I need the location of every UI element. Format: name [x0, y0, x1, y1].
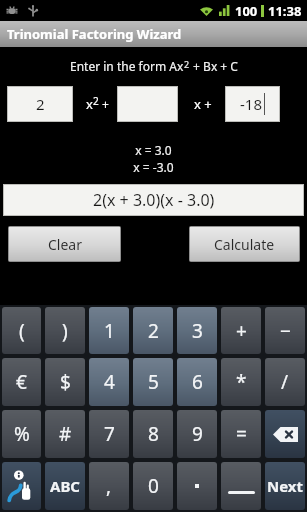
staticText: Next — [267, 476, 304, 496]
button[interactable]: Input method options — [2, 462, 41, 510]
staticText: + — [99, 96, 109, 112]
staticText: 0 — [148, 473, 159, 499]
staticText: * — [236, 369, 247, 395]
staticText: + — [236, 318, 247, 344]
button[interactable]: Space — [221, 462, 261, 510]
button[interactable]: % — [2, 410, 41, 458]
staticText: ( — [19, 318, 25, 344]
staticText: 2 — [184, 58, 190, 70]
staticText: + Bx + C — [190, 58, 238, 74]
staticText: 7 — [104, 421, 115, 447]
button[interactable]: 8 — [133, 410, 173, 458]
staticText: % — [14, 421, 30, 447]
staticText: -18 — [240, 94, 262, 114]
button[interactable]: Calculate — [190, 227, 299, 261]
staticText: x + — [194, 95, 212, 113]
staticText: # — [59, 421, 72, 447]
staticText: 2 — [93, 94, 99, 108]
staticText: 11:38 — [268, 2, 302, 20]
button[interactable]: ) — [45, 307, 85, 354]
staticText: 3 — [192, 318, 203, 344]
staticText: x — [86, 95, 93, 113]
staticText: 1 — [104, 318, 115, 344]
button[interactable]: € — [2, 358, 41, 406]
staticText: Enter in the form Ax — [70, 58, 184, 74]
button[interactable]: 4 — [89, 358, 129, 406]
button[interactable]: ( — [2, 307, 41, 354]
staticText: 4 — [104, 369, 115, 395]
staticText: 8 — [148, 421, 159, 447]
button[interactable]: Delete — [265, 410, 305, 458]
staticText: / — [281, 369, 289, 395]
staticText: 2(x + 3.0)(x - 3.0) — [93, 189, 215, 211]
staticText: ABC — [50, 476, 80, 496]
button[interactable]: 9 — [177, 410, 217, 458]
staticText: − — [280, 318, 291, 344]
button[interactable]: − — [265, 307, 305, 354]
button[interactable]: / — [265, 358, 305, 406]
button[interactable]: 5 — [133, 358, 173, 406]
staticText: 100 — [235, 2, 258, 20]
staticText: 2 — [148, 318, 159, 344]
button[interactable]: 3 — [177, 307, 217, 354]
staticText: , — [106, 473, 112, 499]
button[interactable]: 1 — [89, 307, 129, 354]
staticText: Calculate — [214, 235, 275, 254]
button[interactable]: 6 — [177, 358, 217, 406]
button[interactable]: Next — [265, 462, 305, 510]
button[interactable]: 2 — [133, 307, 173, 354]
button[interactable]: 2(x + 3.0)(x - 3.0) — [4, 185, 303, 215]
staticText: 9 — [192, 421, 203, 447]
staticText: $ — [60, 369, 71, 395]
staticText: Clear — [48, 235, 82, 254]
staticText: € — [16, 369, 27, 395]
button[interactable]: Period — [177, 462, 217, 510]
staticText: x = -3.0 — [0, 159, 307, 175]
button[interactable]: = — [221, 410, 261, 458]
button[interactable]: ABC — [45, 462, 85, 510]
staticText: 5 — [148, 369, 159, 395]
button[interactable]: * — [221, 358, 261, 406]
staticText: 2 — [36, 94, 45, 114]
staticText: x = 3.0 — [0, 142, 307, 158]
button[interactable]: 7 — [89, 410, 129, 458]
button[interactable]: -18 — [226, 87, 279, 121]
staticText: ) — [62, 318, 68, 344]
button[interactable]: , — [89, 462, 129, 510]
button[interactable]: 0 — [133, 462, 173, 510]
button[interactable]: # — [45, 410, 85, 458]
staticText: 6 — [192, 369, 203, 395]
button[interactable]: 2 — [8, 87, 72, 121]
button[interactable]: Clear — [9, 227, 120, 261]
button[interactable]: $ — [45, 358, 85, 406]
button[interactable]: + — [221, 307, 261, 354]
staticText: Trinomial Factoring Wizard — [7, 25, 182, 43]
staticText: = — [236, 421, 247, 447]
